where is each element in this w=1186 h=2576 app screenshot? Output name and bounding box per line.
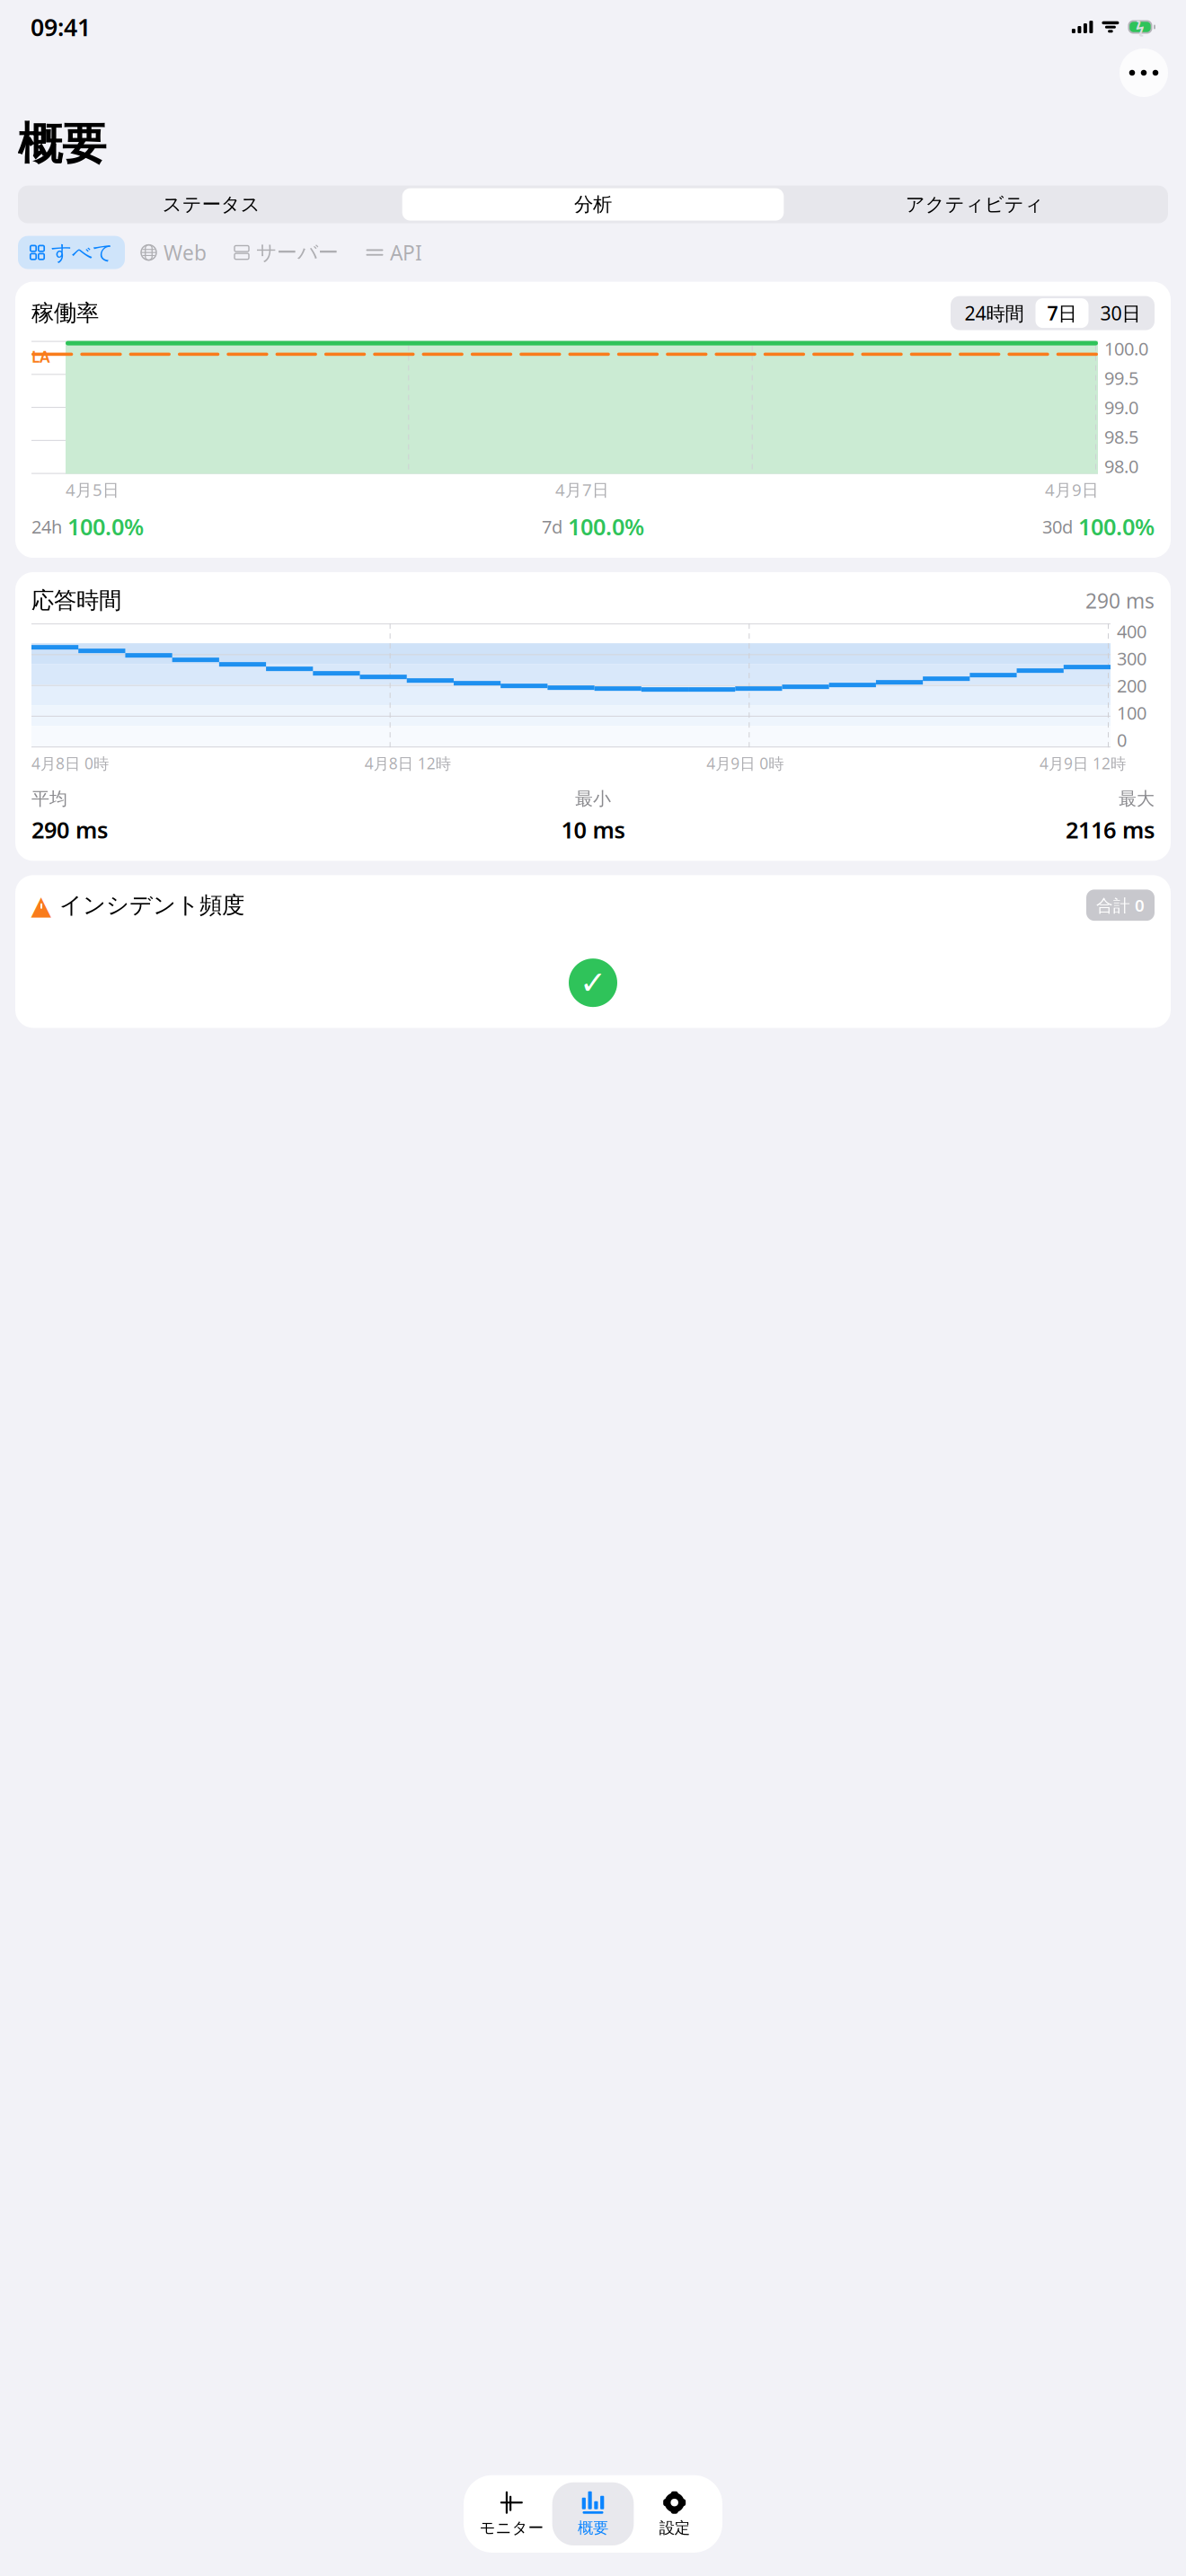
staticText: 100.0% xyxy=(1078,511,1155,542)
staticText: 4月5日 xyxy=(66,478,119,501)
staticText: 平均 xyxy=(31,788,67,810)
staticText: 7日 xyxy=(1047,300,1077,326)
staticText: 300 xyxy=(1117,646,1146,670)
staticText: 100 xyxy=(1117,701,1146,725)
staticText: ✓ xyxy=(580,964,606,1001)
button[interactable]: 分析 xyxy=(402,188,784,221)
staticText: 7d xyxy=(542,515,562,538)
staticText: API xyxy=(390,239,422,266)
staticText: 99.0 xyxy=(1104,395,1138,419)
staticText: 稼働率 xyxy=(31,299,99,327)
staticText: ステータス xyxy=(162,193,260,216)
staticText: 09:41 xyxy=(31,11,91,43)
button[interactable]: その他 xyxy=(1120,49,1168,97)
staticText: 30d xyxy=(1042,515,1073,538)
staticText: 4月7日 xyxy=(555,478,609,501)
staticText: 24h xyxy=(31,515,62,538)
staticText: 100.0% xyxy=(568,511,644,542)
staticText: LA xyxy=(31,346,50,367)
staticText: 2116 ms xyxy=(1066,814,1155,845)
staticText: 400 xyxy=(1117,619,1146,643)
staticText: 設定 xyxy=(659,2518,690,2537)
staticText: 概要 xyxy=(578,2518,608,2537)
button[interactable]: 24時間 xyxy=(953,298,1036,328)
staticText: すべて xyxy=(51,240,113,265)
button[interactable]: サーバー xyxy=(222,236,350,269)
staticText: 4月9日 12時 xyxy=(1040,753,1126,773)
staticText: 合計 0 xyxy=(1096,894,1145,916)
staticText: 最小 xyxy=(575,788,611,810)
staticText: ϟ xyxy=(1136,17,1145,37)
staticText: 98.0 xyxy=(1104,454,1138,478)
staticText: 4月8日 0時 xyxy=(31,753,109,773)
button[interactable]: 設定 xyxy=(634,2482,715,2545)
staticText: 100.0 xyxy=(1104,337,1148,361)
staticText: 分析 xyxy=(574,193,612,216)
staticText: 99.5 xyxy=(1104,366,1138,390)
button[interactable]: 概要 xyxy=(552,2482,634,2545)
staticText: 4月9日 xyxy=(1045,478,1099,501)
staticText: 24時間 xyxy=(965,300,1024,326)
staticText: 98.5 xyxy=(1104,425,1138,449)
staticText: 4月9日 0時 xyxy=(706,753,784,773)
staticText: 290 ms xyxy=(1085,587,1155,614)
staticText: モニター xyxy=(480,2518,543,2537)
button[interactable]: モニター xyxy=(471,2482,552,2545)
staticText: 100.0% xyxy=(67,511,144,542)
staticText: ▲ xyxy=(31,890,52,920)
staticText: 30日 xyxy=(1100,300,1141,326)
staticText: 290 ms xyxy=(31,814,108,845)
staticText: 応答時間 xyxy=(31,587,121,614)
staticText: 概要 xyxy=(18,117,106,171)
button[interactable]: API xyxy=(354,236,434,269)
staticText: アクティビティ xyxy=(905,193,1044,216)
button[interactable]: Web xyxy=(128,236,218,269)
staticText: Web xyxy=(164,239,207,266)
staticText: インシデント頻度 xyxy=(59,891,244,919)
staticText: 10 ms xyxy=(561,814,625,845)
button[interactable]: 7日 xyxy=(1036,298,1089,328)
button[interactable]: アクティビティ xyxy=(784,188,1165,221)
staticText: 4月8日 12時 xyxy=(365,753,451,773)
button[interactable]: ステータス xyxy=(21,188,402,221)
staticText: 200 xyxy=(1117,674,1146,697)
staticText: サーバー xyxy=(256,240,339,265)
staticText: 0 xyxy=(1117,728,1127,752)
staticText: 最大 xyxy=(1119,788,1155,810)
button[interactable]: 30日 xyxy=(1089,298,1152,328)
button[interactable]: すべて xyxy=(18,236,125,269)
